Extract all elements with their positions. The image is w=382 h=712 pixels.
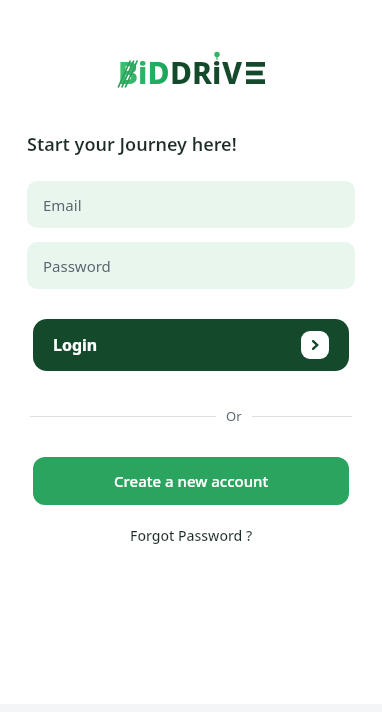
staticText: i: [212, 52, 222, 93]
staticText: Email: [43, 195, 82, 215]
button[interactable]: Forgot Password ?: [120, 522, 263, 549]
button[interactable]: Create a new account: [33, 457, 349, 505]
staticText: Start your Journey here!: [27, 132, 237, 157]
staticText: Or: [226, 407, 242, 425]
staticText: BiD: [118, 52, 170, 93]
staticText: Create a new account: [114, 471, 269, 491]
other: Continue: [301, 331, 329, 359]
staticText: Password: [43, 256, 111, 276]
button[interactable]: Login: [33, 319, 349, 371]
staticText: DR: [170, 52, 212, 93]
staticText: Login: [53, 334, 98, 356]
staticText: Forgot Password ?: [130, 526, 253, 545]
button[interactable]: Email: [27, 181, 355, 228]
button[interactable]: Password: [27, 242, 355, 289]
staticText: V: [222, 52, 243, 93]
